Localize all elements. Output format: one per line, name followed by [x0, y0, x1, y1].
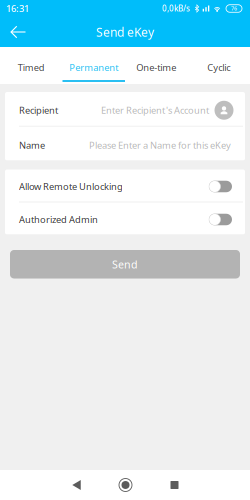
button[interactable]: Back	[52, 470, 101, 500]
staticText: 0,0kB/s	[162, 3, 190, 14]
staticText: Allow Remote Unlocking	[19, 180, 123, 193]
button[interactable]: Recents	[150, 470, 199, 500]
button[interactable]: Send	[10, 250, 240, 278]
button[interactable]: Permanent	[62, 47, 125, 84]
button[interactable]: Home	[101, 470, 150, 500]
button[interactable]: Cyclic	[187, 47, 250, 84]
staticText: Recipient	[19, 104, 58, 116]
button[interactable]: Choose contact	[209, 93, 239, 127]
button[interactable]: Timed	[0, 47, 62, 84]
button[interactable]: Back	[0, 19, 35, 45]
staticText: 16:31	[6, 2, 29, 15]
staticText: Enter Recipient's Account	[101, 104, 209, 116]
button[interactable]: Authorized Admin	[5, 202, 245, 234]
staticText: Timed	[18, 61, 45, 74]
staticText: 76	[231, 5, 237, 12]
staticText: Please Enter a Name for this eKey	[89, 139, 231, 151]
staticText: Send	[112, 257, 138, 271]
button[interactable]: One-time	[125, 47, 187, 84]
staticText: Send eKey	[96, 24, 154, 40]
staticText: One-time	[136, 61, 176, 74]
button[interactable]: Allow Remote Unlocking	[5, 169, 245, 201]
staticText: Cyclic	[207, 61, 230, 74]
staticText: Name	[19, 139, 45, 151]
staticText: Authorized Admin	[19, 213, 98, 226]
staticText: Permanent	[69, 61, 118, 74]
